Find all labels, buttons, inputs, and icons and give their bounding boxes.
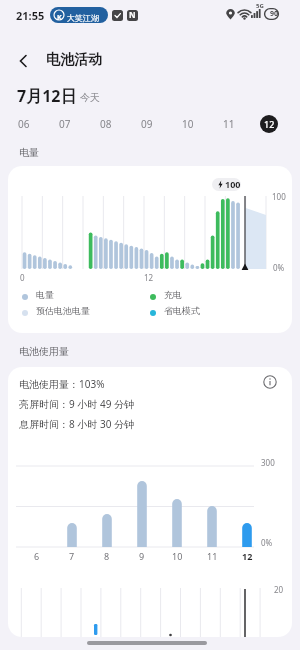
button[interactable]: 07 xyxy=(49,113,81,135)
staticText: 电量 xyxy=(36,289,54,300)
staticText: 21:55 xyxy=(16,8,45,23)
staticText: 100 xyxy=(272,191,286,202)
staticText: 10 xyxy=(182,117,194,131)
staticText: 10 xyxy=(172,550,183,562)
staticText: N xyxy=(129,10,136,20)
staticText: 11 xyxy=(223,117,235,131)
button[interactable]: 11 xyxy=(213,113,245,135)
staticText: 0% xyxy=(261,537,273,548)
button[interactable]: 09 xyxy=(131,113,163,135)
staticText: 100 xyxy=(225,178,241,190)
staticText: 20 xyxy=(274,584,284,595)
staticText: 预估电池电量 xyxy=(36,305,90,316)
staticText: 8 xyxy=(104,550,110,562)
staticText: 06 xyxy=(18,117,30,131)
staticText: K xyxy=(57,13,62,23)
staticText: 充电 xyxy=(164,289,182,300)
button[interactable] xyxy=(263,375,277,389)
staticText: 12 xyxy=(144,272,154,283)
staticText: 7 xyxy=(69,550,75,562)
staticText: 09 xyxy=(141,117,153,131)
staticText: 08 xyxy=(100,117,112,131)
staticText: 息屏时间：8 小时 30 分钟 xyxy=(19,417,134,431)
staticText: 电池使用量：103% xyxy=(19,377,105,391)
staticText: 300 xyxy=(261,457,275,468)
staticText: 省电模式 xyxy=(164,305,200,316)
staticText: 电量 xyxy=(19,146,39,159)
staticText: 5G xyxy=(256,2,264,10)
button[interactable]: 10 xyxy=(172,113,204,135)
staticText: 0% xyxy=(273,262,285,273)
staticText: 6 xyxy=(34,550,40,562)
staticText: 0 xyxy=(20,272,25,283)
staticText: 今天 xyxy=(80,91,100,104)
staticText: 12 xyxy=(264,118,275,130)
button[interactable]: 12 xyxy=(260,115,278,133)
staticText: 9 xyxy=(139,550,145,562)
staticText: 电池使用量 xyxy=(19,345,69,358)
button[interactable] xyxy=(10,48,36,74)
staticText: 7月12日 xyxy=(17,85,77,107)
staticText: 11 xyxy=(207,550,218,562)
staticText: 90 xyxy=(270,9,279,19)
staticText: 亮屏时间：9 小时 49 分钟 xyxy=(19,397,134,411)
staticText: 电池活动 xyxy=(46,51,102,69)
button[interactable]: 06 xyxy=(8,113,40,135)
staticText: 大笑江湖 xyxy=(67,13,99,23)
staticText: 07 xyxy=(59,117,71,131)
staticText: 12 xyxy=(242,550,253,562)
button[interactable]: 08 xyxy=(90,113,122,135)
